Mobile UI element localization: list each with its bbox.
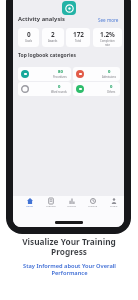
staticText: Training <box>88 204 98 207</box>
button[interactable]: 0 <box>73 67 120 81</box>
staticText: 0 <box>108 69 111 75</box>
staticText: 0 <box>27 30 31 39</box>
button[interactable]: 0 <box>18 28 39 47</box>
staticText: Procedures <box>53 75 67 79</box>
staticText: 2 <box>51 30 55 39</box>
button[interactable]: 1.2% <box>93 28 122 47</box>
staticText: Goals <box>25 39 33 43</box>
staticText: 0 <box>110 84 113 90</box>
button[interactable]: 2 <box>42 28 64 47</box>
button[interactable]: Analysis <box>61 198 82 207</box>
staticText: Others <box>107 90 116 94</box>
staticText: 172 <box>73 30 84 39</box>
button[interactable]: 172 <box>66 28 90 47</box>
button[interactable]: 0 <box>18 82 71 96</box>
staticText: Home <box>26 204 33 207</box>
staticText: Awards <box>48 39 58 43</box>
staticText: Visualize Your Training Progress <box>22 236 116 257</box>
staticText: Profile <box>110 204 118 207</box>
button[interactable]: Home <box>19 198 40 207</box>
button[interactable]: See more <box>98 17 119 23</box>
button[interactable]: Logbook <box>40 198 61 207</box>
button[interactable]: 80 <box>18 67 71 81</box>
staticText: rate <box>105 43 111 47</box>
button[interactable]: Profile <box>103 198 124 207</box>
staticText: Analysis <box>67 204 77 207</box>
staticText: 1.2% <box>100 30 115 39</box>
staticText: 80 <box>58 69 63 75</box>
staticText: Total <box>75 39 82 43</box>
staticText: Top logbook categories <box>18 52 76 59</box>
button[interactable]: 0 <box>73 82 120 96</box>
staticText: Admissions <box>102 75 116 79</box>
staticText: Ward rounds <box>51 90 67 94</box>
staticText: Activity analysis <box>18 15 65 23</box>
staticText: Logbook <box>46 204 56 207</box>
staticText: Completion <box>100 39 115 43</box>
button[interactable]: Training <box>82 198 103 207</box>
staticText: 0 <box>58 84 61 90</box>
staticText: Stay Informed about Your Overall Perform… <box>23 262 116 277</box>
